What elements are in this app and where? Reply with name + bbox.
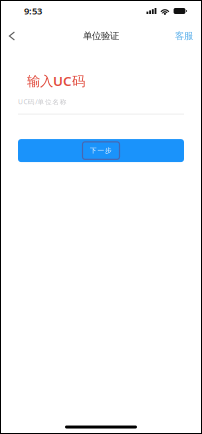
staticText: 输入UC码 bbox=[27, 72, 85, 90]
staticText: UC码/单位名称 bbox=[18, 97, 67, 106]
button[interactable]: 下一步 bbox=[18, 139, 184, 162]
staticText: 下一步 bbox=[90, 146, 112, 155]
staticText: 9:53 bbox=[24, 5, 42, 17]
staticText: 单位验证 bbox=[83, 30, 119, 42]
button[interactable]: 返回 bbox=[1, 22, 23, 50]
button[interactable]: 客服 bbox=[175, 22, 193, 50]
staticText: 客服 bbox=[175, 30, 193, 42]
